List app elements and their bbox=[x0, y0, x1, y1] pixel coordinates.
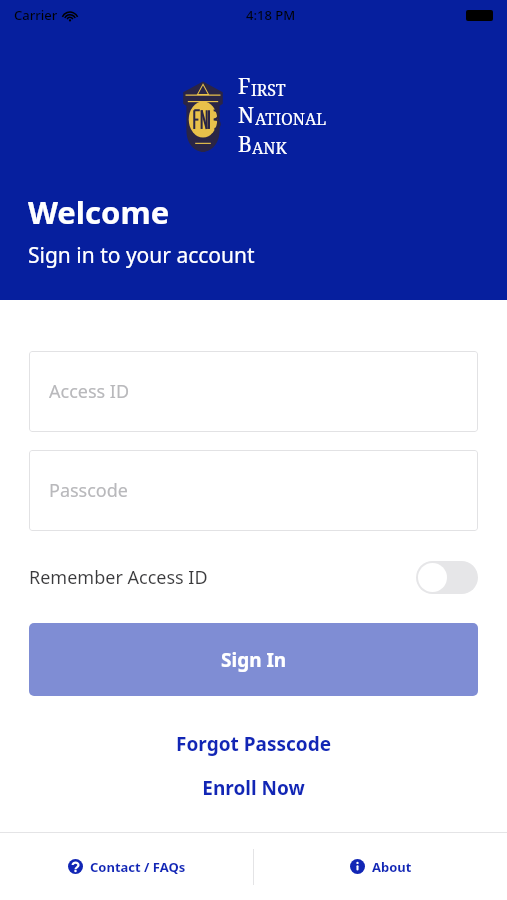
staticText: ATIONAL bbox=[255, 108, 327, 130]
staticText: 4:18 PM bbox=[246, 6, 296, 24]
staticText: IRST bbox=[251, 79, 286, 101]
staticText: ANK bbox=[252, 137, 287, 159]
staticText: Forgot Passcode bbox=[176, 731, 331, 757]
staticText: Sign in to your account bbox=[28, 241, 255, 270]
staticText: About bbox=[372, 858, 412, 876]
button[interactable]: Access ID bbox=[29, 351, 478, 432]
button[interactable]: Enroll Now bbox=[29, 775, 478, 801]
staticText: Carrier bbox=[14, 6, 58, 24]
staticText: Contact / FAQs bbox=[90, 858, 186, 876]
button[interactable]: Contact / FAQs bbox=[0, 833, 253, 900]
staticText: Remember Access ID bbox=[29, 565, 208, 590]
staticText: N bbox=[238, 101, 255, 130]
staticText: Enroll Now bbox=[202, 775, 305, 801]
staticText: Passcode bbox=[49, 478, 128, 503]
staticText: Access ID bbox=[49, 379, 130, 404]
button[interactable]: Forgot Passcode bbox=[29, 731, 478, 757]
button[interactable]: Passcode bbox=[29, 450, 478, 531]
staticText: F bbox=[238, 72, 251, 101]
staticText: Welcome bbox=[28, 191, 170, 233]
staticText: Sign In bbox=[221, 647, 287, 673]
button[interactable]: Sign In bbox=[29, 623, 478, 696]
staticText: B bbox=[238, 130, 252, 159]
button[interactable]: About bbox=[254, 833, 507, 900]
button[interactable]: Remember Access ID toggle bbox=[416, 561, 478, 594]
button[interactable]: Remember Access ID bbox=[29, 553, 478, 601]
